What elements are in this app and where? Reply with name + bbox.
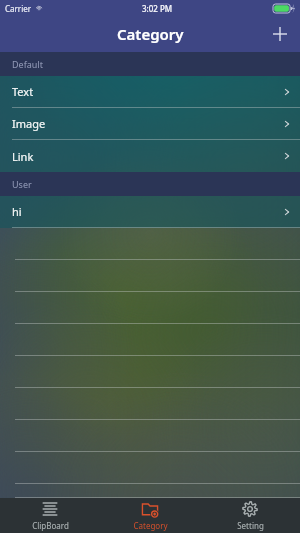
button[interactable]: Add category <box>260 16 300 52</box>
button[interactable]: Link <box>0 140 300 172</box>
staticText: 3:02 PM <box>142 3 173 14</box>
staticText: User <box>12 178 32 190</box>
staticText: Carrier <box>5 3 32 14</box>
button[interactable]: Category <box>110 498 190 533</box>
staticText: Setting <box>237 520 264 531</box>
button[interactable]: Image <box>0 108 300 140</box>
button[interactable]: Text <box>0 76 300 108</box>
staticText: Category <box>117 24 184 44</box>
staticText: Image <box>12 116 46 131</box>
staticText: Text <box>12 84 34 99</box>
staticText: Link <box>12 149 34 164</box>
button[interactable]: hi <box>0 196 300 228</box>
staticText: Category <box>133 520 168 531</box>
staticText: hi <box>12 204 22 219</box>
button[interactable]: Setting <box>210 498 290 533</box>
button[interactable]: ClipBoard <box>10 498 90 533</box>
staticText: ClipBoard <box>32 520 69 531</box>
staticText: Default <box>12 58 43 70</box>
